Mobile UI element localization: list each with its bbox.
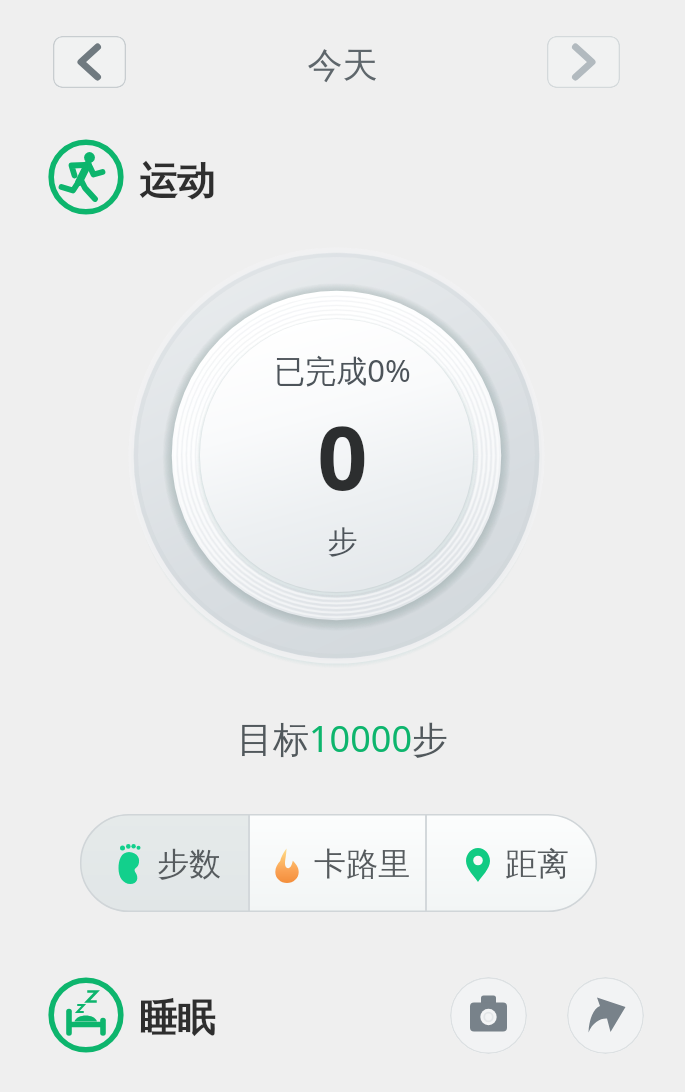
button[interactable]: Camera <box>450 977 527 1054</box>
staticText: 步数 <box>157 844 221 884</box>
button[interactable]: Next day <box>547 36 620 88</box>
staticText: 步 <box>0 523 685 561</box>
button[interactable]: Sleep <box>48 977 124 1053</box>
button[interactable]: Share <box>567 977 644 1054</box>
button[interactable]: 步数 <box>80 814 248 912</box>
staticText: 运动 <box>139 157 215 205</box>
staticText: 0 <box>0 396 685 516</box>
staticText: 目标10000步 <box>0 714 685 763</box>
staticText: 睡眠 <box>139 994 215 1042</box>
button[interactable]: 卡路里 <box>250 814 425 912</box>
staticText: 卡路里 <box>314 844 410 884</box>
staticText: 已完成0% <box>0 349 685 391</box>
button[interactable]: 距离 <box>427 814 597 912</box>
staticText: 今天 <box>0 43 685 87</box>
staticText: 距离 <box>505 844 569 884</box>
button[interactable]: Exercise <box>48 139 124 215</box>
button[interactable]: Previous day <box>53 36 126 88</box>
